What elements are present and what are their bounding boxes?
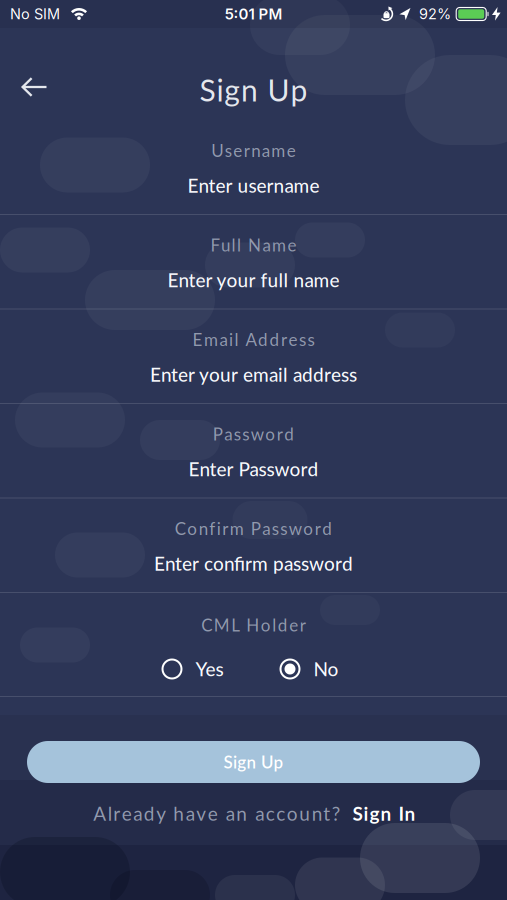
button[interactable]: Enter your email address (150, 363, 357, 386)
staticText: 92% (419, 5, 451, 23)
staticText: Sign In (352, 802, 415, 825)
staticText: Already have an account? (93, 802, 341, 825)
button[interactable]: Sign Up (27, 741, 480, 783)
staticText: Enter username (187, 174, 319, 197)
staticText: No SIM (10, 5, 60, 23)
staticText: Sign Up (224, 752, 283, 772)
button[interactable]: Back (0, 69, 48, 105)
button[interactable]: Yes (161, 658, 223, 680)
staticText: Enter Password (188, 458, 318, 480)
staticText: Confirm Password (175, 518, 332, 539)
button[interactable]: Enter username (187, 174, 319, 197)
button[interactable]: Enter your full name (167, 269, 339, 291)
staticText: Yes (195, 658, 223, 680)
staticText: No (313, 658, 338, 680)
staticText: Enter confirm password (154, 552, 353, 575)
staticText: Full Name (210, 235, 296, 255)
staticText: Enter your email address (150, 363, 357, 386)
button[interactable]: Already have an account? (89, 802, 418, 825)
staticText: Email Address (192, 329, 314, 350)
staticText: Username (211, 140, 296, 161)
button[interactable]: Enter Password (188, 458, 318, 480)
staticText: 5:01 PM (224, 5, 282, 23)
staticText: Password (213, 424, 294, 444)
staticText: Sign Up (200, 72, 307, 108)
button[interactable]: Enter confirm password (154, 552, 353, 575)
staticText: Enter your full name (167, 269, 339, 291)
staticText: CML Holder (201, 615, 306, 635)
button[interactable]: No (279, 658, 338, 680)
